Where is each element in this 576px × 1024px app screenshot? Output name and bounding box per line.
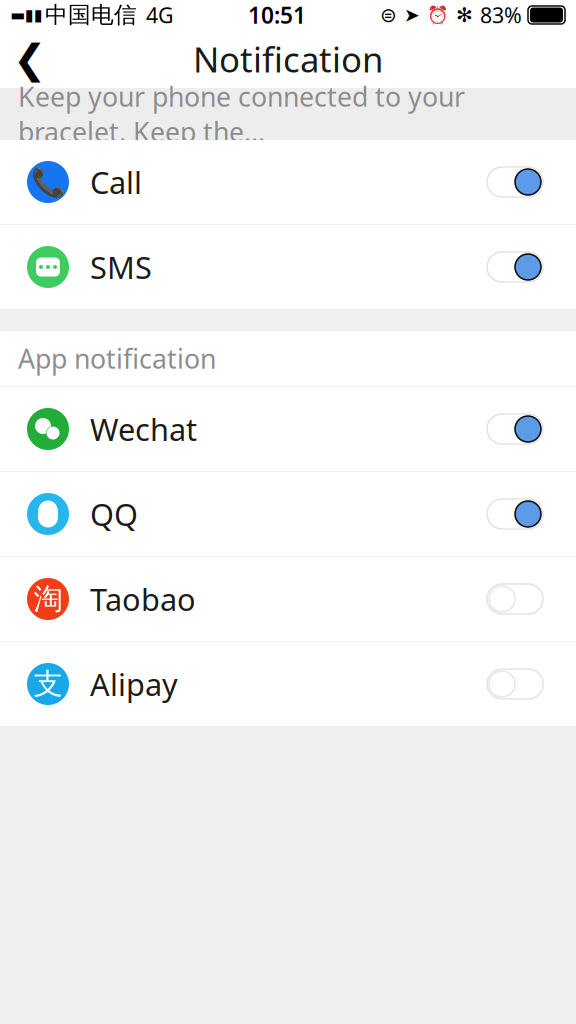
button[interactable]: QQ [0, 472, 576, 556]
staticText: ▬▮▮ [10, 6, 43, 24]
button[interactable]: Back [0, 30, 60, 88]
staticText: ❮ [13, 36, 47, 82]
staticText: Keep your phone connected to your bracel… [18, 79, 465, 149]
staticText: SMS [90, 247, 152, 287]
staticText: 支 [33, 666, 62, 702]
button[interactable]: 淘 [0, 557, 576, 641]
staticText: ✻ [456, 4, 473, 26]
staticText: Call [90, 162, 142, 202]
staticText: Taobao [90, 579, 196, 619]
staticText: 83% [480, 1, 522, 29]
staticText: 📞 [30, 166, 65, 198]
staticText: ⊜ [380, 4, 397, 26]
button[interactable]: SMS [0, 225, 576, 309]
staticText: Wechat [90, 409, 197, 449]
staticText: Notification [193, 36, 383, 82]
button[interactable]: 支 [0, 642, 576, 726]
button[interactable]: 📞 [0, 140, 576, 224]
staticText: ⏰ [427, 5, 449, 25]
staticText: 中国电信 [45, 1, 137, 29]
staticText: 4G [146, 1, 174, 29]
button[interactable]: Wechat [0, 387, 576, 471]
staticText: App notification [18, 341, 216, 376]
staticText: 淘 [33, 581, 62, 617]
staticText: ➤ [404, 4, 420, 26]
staticText: Alipay [90, 664, 178, 704]
staticText: 10:51 [248, 0, 306, 30]
staticText: QQ [90, 494, 138, 534]
